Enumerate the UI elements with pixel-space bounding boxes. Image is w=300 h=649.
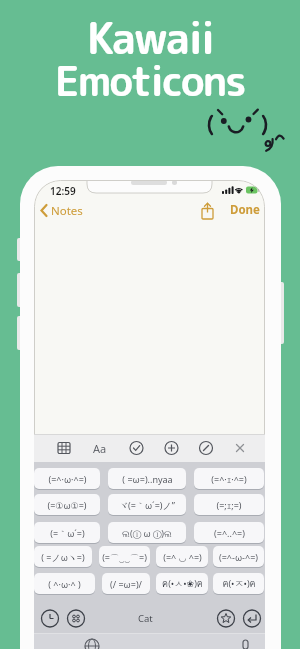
staticText: ( =ノωヽ=) bbox=[41, 551, 85, 563]
button[interactable] bbox=[214, 606, 238, 630]
button[interactable] bbox=[199, 202, 217, 221]
staticText: ( ^·ω·^ ) bbox=[48, 578, 81, 590]
button[interactable] bbox=[240, 606, 264, 630]
staticText: (=^·ω·^=) bbox=[48, 473, 87, 485]
button[interactable] bbox=[52, 438, 76, 458]
button[interactable] bbox=[228, 438, 252, 458]
button[interactable]: (=^·ｪ·^=) bbox=[194, 468, 264, 489]
button[interactable]: ฅ(•ㅅ•❀)ฅ bbox=[156, 573, 208, 594]
button[interactable]: ฅ(•ㅈ•)ฅ bbox=[213, 573, 264, 594]
staticText: (=①ω①=) bbox=[47, 499, 87, 511]
button[interactable]: ヾ(=｀ω´=)ノ” bbox=[108, 494, 186, 515]
button[interactable] bbox=[82, 634, 104, 649]
button[interactable]: ଲ(ⓛ ω ⓛ)ଲ bbox=[108, 522, 186, 543]
button[interactable]: Notes bbox=[38, 202, 118, 220]
staticText: Kawaii bbox=[87, 8, 214, 68]
button[interactable] bbox=[232, 634, 254, 649]
button[interactable]: (=｀ω´=) bbox=[34, 522, 100, 543]
button[interactable] bbox=[64, 606, 88, 630]
staticText: (=⌒‿‿⌒=) bbox=[102, 551, 147, 563]
button[interactable]: ( =ノωヽ=) bbox=[34, 546, 92, 567]
button[interactable] bbox=[193, 438, 218, 458]
staticText: ଲ(ⓛ ω ⓛ)ଲ bbox=[122, 527, 172, 539]
staticText: (=^·ｪ·^=) bbox=[211, 473, 247, 485]
button[interactable]: (=^..^=) bbox=[194, 522, 264, 543]
button[interactable]: (=^-ω-^=) bbox=[213, 546, 264, 567]
staticText: Aa bbox=[93, 441, 107, 456]
button[interactable]: Done bbox=[230, 202, 260, 218]
button[interactable]: (=^ ◡ ^=) bbox=[156, 546, 208, 567]
button[interactable]: (=⌒‿‿⌒=) bbox=[99, 546, 150, 567]
button[interactable] bbox=[124, 438, 149, 458]
button[interactable]: (=;ｪ;=) bbox=[194, 494, 264, 515]
staticText: ฅ(•ㅈ•)ฅ bbox=[222, 577, 256, 591]
staticText: ヾ(=｀ω´=)ノ” bbox=[119, 499, 175, 511]
staticText: (/ =ω=)/ bbox=[110, 578, 142, 590]
button[interactable]: ( =ω=)..nyaa bbox=[108, 468, 186, 489]
staticText: (=^-ω-^=) bbox=[219, 551, 258, 563]
staticText: Emoticons bbox=[55, 52, 245, 109]
staticText: (=｀ω´=) bbox=[50, 527, 85, 539]
staticText: (=^ ◡ ^=) bbox=[163, 551, 202, 563]
button[interactable] bbox=[38, 606, 62, 630]
staticText: Notes bbox=[51, 203, 83, 219]
staticText: (=^..^=) bbox=[214, 527, 245, 539]
staticText: Done bbox=[230, 202, 260, 218]
button[interactable] bbox=[89, 438, 113, 458]
button[interactable]: ( ^·ω·^ ) bbox=[34, 573, 95, 594]
staticText: ฅ(•ㅅ•❀)ฅ bbox=[162, 577, 203, 591]
button[interactable] bbox=[159, 438, 184, 458]
staticText: (=;ｪ;=) bbox=[216, 499, 242, 511]
staticText: ( =ω=)..nyaa bbox=[122, 473, 173, 485]
staticText: Cat bbox=[138, 612, 153, 625]
button[interactable]: (=^·ω·^=) bbox=[34, 468, 100, 489]
button[interactable]: (=①ω①=) bbox=[34, 494, 100, 515]
staticText: 12:59 bbox=[50, 184, 76, 198]
button[interactable] bbox=[128, 606, 170, 630]
button[interactable]: (/ =ω=)/ bbox=[102, 573, 150, 594]
